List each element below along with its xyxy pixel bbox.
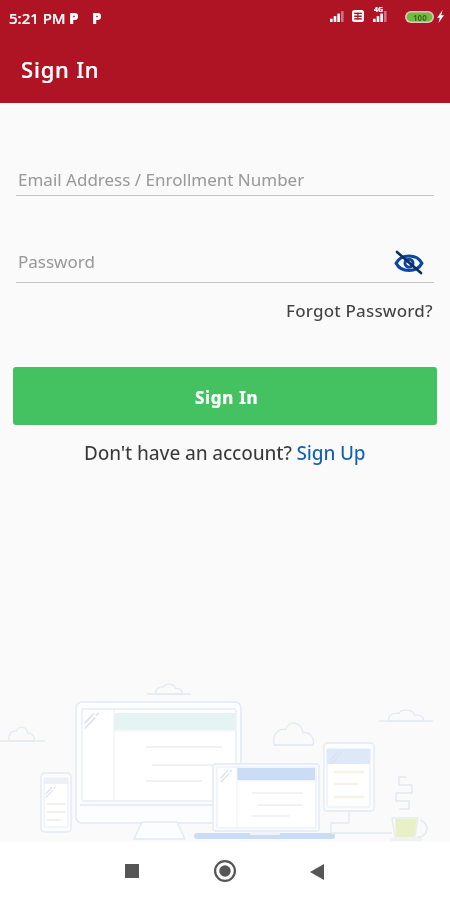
button[interactable]: Recents <box>108 842 156 900</box>
staticText: 100 <box>413 12 427 23</box>
staticText: P <box>92 8 102 28</box>
staticText: 4G <box>374 5 384 15</box>
staticText: Sign In <box>195 386 259 409</box>
button[interactable]: Back <box>293 842 341 900</box>
button[interactable]: Don't have an account? Sign Up <box>82 438 368 468</box>
button[interactable]: Sign In <box>13 367 437 425</box>
staticText: P <box>69 8 79 28</box>
button[interactable]: Toggle password visibility <box>390 247 427 278</box>
staticText: Don't have an account? Sign Up <box>84 440 366 466</box>
staticText: Password <box>18 250 95 273</box>
staticText: Sign In <box>21 54 100 84</box>
button[interactable]: Home <box>201 842 249 900</box>
staticText: Email Address / Enrollment Number <box>18 168 305 191</box>
staticText: 5:21 PM <box>9 8 66 28</box>
button[interactable]: Forgot Password? <box>282 295 437 326</box>
staticText: Forgot Password? <box>286 299 433 322</box>
